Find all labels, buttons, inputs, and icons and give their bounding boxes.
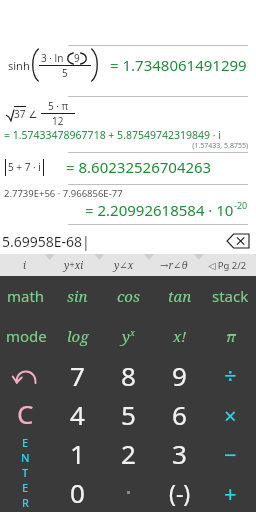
button[interactable]: 0: [51, 473, 103, 512]
button[interactable]: 8: [103, 355, 154, 395]
button[interactable]: i: [0, 254, 49, 276]
staticText: x!: [173, 326, 187, 346]
staticText: 9: [172, 358, 187, 393]
button[interactable]: x!: [154, 316, 205, 355]
button[interactable]: +: [205, 473, 256, 512]
staticText: y+xi: [64, 258, 84, 272]
staticText: 2.7739E+56 · 7.966856E-77: [4, 187, 123, 200]
staticText: 9: [74, 51, 80, 65]
button[interactable]: mode: [0, 316, 52, 355]
button[interactable]: tan: [154, 276, 205, 316]
button[interactable]: y∠x: [99, 254, 149, 276]
staticText: +: [224, 478, 237, 508]
button[interactable]: math: [0, 276, 52, 316]
staticText: i: [23, 258, 27, 272]
button[interactable]: sin: [52, 276, 103, 316]
button[interactable]: E: [0, 433, 51, 512]
staticText: 0: [70, 475, 85, 510]
button[interactable]: (-): [154, 473, 205, 512]
staticText: = 8.60232526704263: [66, 157, 212, 177]
button[interactable]: log: [52, 316, 103, 355]
staticText: 5: [62, 66, 68, 80]
staticText: →r∠θ: [160, 258, 188, 272]
button[interactable]: ×: [205, 395, 256, 434]
button[interactable]: 6: [154, 395, 205, 434]
button[interactable]: π: [205, 316, 256, 355]
button[interactable]: 4: [51, 395, 103, 434]
button[interactable]: ÷: [205, 355, 256, 395]
staticText: ×: [224, 400, 237, 430]
staticText: 2: [121, 436, 136, 471]
staticText: 5 + 7 · i: [8, 160, 41, 174]
staticText: tan: [168, 286, 192, 306]
staticText: 5 · π: [48, 99, 69, 113]
button[interactable]: →r∠θ: [149, 254, 199, 276]
button[interactable]: 7: [51, 355, 103, 395]
staticText: N: [21, 450, 30, 465]
button[interactable]: stack: [205, 276, 256, 316]
staticText: y∠x: [114, 258, 134, 272]
button[interactable]: [103, 473, 154, 512]
staticText: E: [22, 480, 29, 495]
staticText: log: [67, 326, 89, 346]
button[interactable]: C: [0, 394, 51, 433]
staticText: ∠: [26, 107, 41, 121]
button[interactable]: −: [205, 434, 256, 473]
staticText: 5.69958E-68|: [2, 232, 90, 251]
staticText: mode: [6, 326, 47, 346]
staticText: stack: [212, 286, 249, 306]
staticText: 1: [70, 436, 85, 471]
staticText: y: [122, 326, 130, 346]
button[interactable]: 5: [103, 395, 154, 434]
staticText: 7: [70, 358, 85, 393]
button[interactable]: y+xi: [49, 254, 99, 276]
button[interactable]: Backspace: [226, 232, 250, 250]
button[interactable]: cos: [103, 276, 154, 316]
staticText: 4: [70, 397, 85, 432]
button[interactable]: Undo: [0, 355, 51, 394]
button[interactable]: 2: [103, 434, 154, 473]
staticText: 3: [172, 436, 187, 471]
button[interactable]: y: [103, 316, 154, 355]
staticText: 12: [52, 114, 64, 128]
staticText: (-): [169, 477, 191, 508]
button[interactable]: 9: [154, 355, 205, 395]
staticText: 37: [14, 107, 26, 121]
staticText: -20: [234, 199, 248, 211]
staticText: math: [7, 286, 45, 306]
staticText: x: [130, 326, 135, 338]
button[interactable]: ◁ Pg 2/2: [199, 254, 256, 276]
staticText: 3 · ln: [41, 51, 64, 65]
staticText: E: [22, 435, 29, 450]
staticText: R: [22, 495, 29, 510]
staticText: ÷: [224, 360, 237, 390]
staticText: T: [22, 465, 29, 480]
staticText: = 1.57433478967718 + 5.87549742319849 · …: [4, 128, 221, 142]
staticText: (1.57433, 5.8755): [0, 141, 248, 151]
staticText: 8: [121, 358, 136, 393]
button[interactable]: 3: [154, 434, 205, 473]
staticText: sinh: [8, 58, 30, 73]
staticText: sin: [67, 286, 88, 306]
staticText: = 2.20992618584 · 10: [85, 200, 234, 220]
staticText: 6: [172, 397, 187, 432]
staticText: C: [17, 396, 34, 431]
staticText: = 1.7348061491299: [110, 55, 247, 75]
staticText: cos: [117, 286, 140, 306]
staticText: π: [226, 326, 236, 346]
staticText: −: [224, 439, 237, 469]
button[interactable]: 1: [51, 434, 103, 473]
staticText: ◁ Pg 2/2: [208, 259, 247, 272]
staticText: 5: [121, 397, 136, 432]
